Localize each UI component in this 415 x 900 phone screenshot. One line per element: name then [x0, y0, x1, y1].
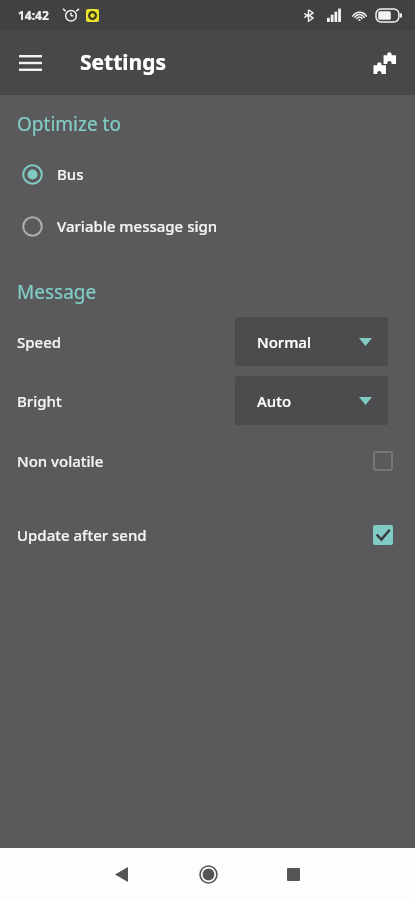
staticText: 14:42: [18, 7, 49, 23]
button[interactable]: Plugins: [363, 41, 407, 85]
button[interactable]: Back: [99, 852, 143, 896]
button[interactable]: Normal: [235, 317, 388, 366]
button[interactable]: Update after send: [0, 515, 415, 555]
staticText: Variable message sign: [57, 216, 218, 236]
staticText: Update after send: [17, 525, 147, 545]
staticText: Normal: [257, 332, 311, 352]
staticText: Auto: [257, 391, 292, 411]
staticText: Settings: [80, 48, 167, 77]
staticText: Speed: [17, 332, 62, 352]
staticText: Non volatile: [17, 451, 104, 471]
staticText: Optimize to: [17, 111, 121, 137]
staticText: Message: [17, 279, 97, 305]
button[interactable]: Home: [186, 852, 230, 896]
button[interactable]: Non volatile: [0, 441, 415, 481]
button[interactable]: Bus: [0, 157, 415, 191]
staticText: Bright: [17, 391, 62, 411]
button[interactable]: Variable message sign: [0, 209, 415, 243]
button[interactable]: Open navigation menu: [8, 41, 52, 85]
button[interactable]: Auto: [235, 376, 388, 425]
staticText: Bus: [57, 164, 84, 184]
button[interactable]: Recent apps: [271, 852, 315, 896]
